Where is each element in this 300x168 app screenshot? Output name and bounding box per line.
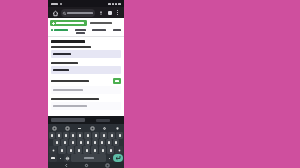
button[interactable] xyxy=(77,132,83,139)
button[interactable] xyxy=(61,139,68,146)
button[interactable]: Tabs xyxy=(106,9,113,16)
button[interactable] xyxy=(51,86,121,94)
button[interactable] xyxy=(92,139,98,146)
button[interactable]: Shift xyxy=(49,146,57,154)
button[interactable]: Back xyxy=(63,162,69,168)
button[interactable] xyxy=(51,66,121,74)
button[interactable]: Backspace xyxy=(115,146,123,154)
button[interactable] xyxy=(51,102,121,110)
button[interactable] xyxy=(112,28,122,32)
button[interactable]: Period xyxy=(107,154,112,162)
button[interactable] xyxy=(91,28,107,32)
button[interactable] xyxy=(74,28,87,35)
button[interactable] xyxy=(50,20,87,26)
button[interactable]: Home xyxy=(83,162,89,168)
button[interactable]: Clipboard xyxy=(76,125,83,132)
button[interactable]: Enter xyxy=(113,154,123,162)
button[interactable] xyxy=(99,146,106,154)
button[interactable]: Change language xyxy=(64,154,70,162)
button[interactable]: Symbols xyxy=(49,154,57,162)
button[interactable] xyxy=(92,132,99,139)
button[interactable] xyxy=(67,146,74,154)
button[interactable] xyxy=(116,132,123,139)
button[interactable]: Space xyxy=(71,154,106,162)
button[interactable] xyxy=(56,132,62,139)
button[interactable]: Recent apps xyxy=(104,162,110,168)
button[interactable] xyxy=(50,28,69,32)
button[interactable] xyxy=(99,139,105,146)
button[interactable] xyxy=(58,146,66,154)
button[interactable] xyxy=(84,132,91,139)
button[interactable]: Stickers xyxy=(114,125,121,132)
button[interactable]: More options xyxy=(114,9,121,16)
button[interactable]: Translate xyxy=(89,125,96,132)
button[interactable] xyxy=(106,139,112,146)
button[interactable] xyxy=(85,139,91,146)
button[interactable] xyxy=(61,9,95,17)
button[interactable] xyxy=(113,139,119,146)
button[interactable]: GIF xyxy=(64,125,71,132)
button[interactable]: Comma xyxy=(58,154,63,162)
button[interactable] xyxy=(108,132,115,139)
button[interactable] xyxy=(107,146,114,154)
button[interactable]: Voice search xyxy=(97,9,104,16)
button[interactable] xyxy=(69,139,76,146)
button[interactable]: Emoji keyboard xyxy=(51,125,58,132)
button[interactable] xyxy=(63,132,69,139)
button[interactable] xyxy=(70,132,76,139)
button[interactable] xyxy=(77,139,84,146)
button[interactable] xyxy=(90,20,112,26)
button[interactable] xyxy=(100,132,107,139)
button[interactable] xyxy=(51,50,121,58)
button[interactable] xyxy=(83,146,90,154)
button[interactable] xyxy=(91,146,98,154)
button[interactable]: Home xyxy=(51,9,59,17)
button[interactable]: Add email xyxy=(113,78,121,84)
button[interactable]: Settings xyxy=(101,125,108,132)
button[interactable] xyxy=(75,146,82,154)
button[interactable] xyxy=(53,139,60,146)
button[interactable] xyxy=(49,132,55,139)
